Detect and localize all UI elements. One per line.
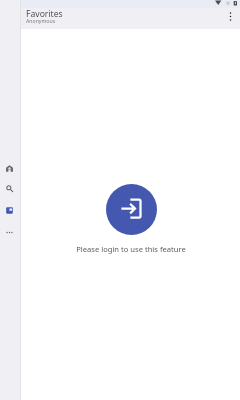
button[interactable]: Favorites [0,205,18,215]
staticText: Favorites [26,8,63,20]
staticText: Please login to use this feature [76,244,186,254]
button[interactable]: Home [0,163,18,173]
button[interactable]: More options [223,9,237,23]
button[interactable]: Search [0,183,18,193]
button[interactable]: More [0,227,18,237]
button[interactable]: Favorites [26,8,116,29]
button[interactable]: Login [106,184,157,235]
staticText: Anonymous [26,17,56,24]
